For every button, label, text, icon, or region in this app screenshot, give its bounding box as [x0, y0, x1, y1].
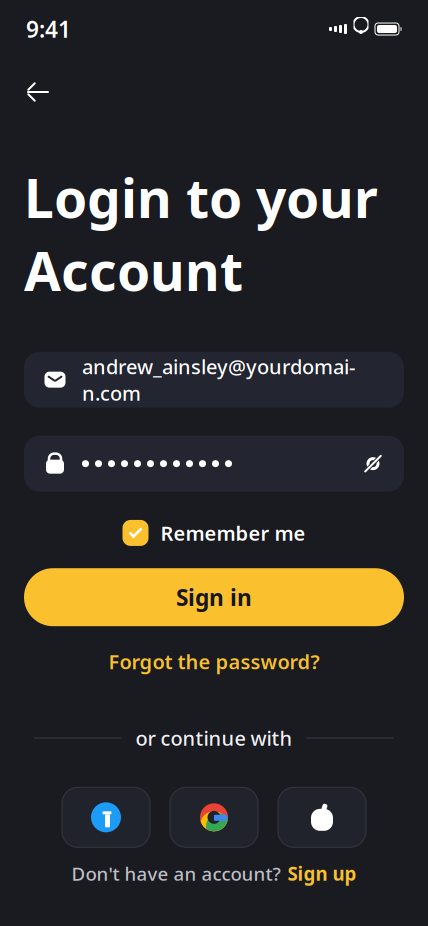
button[interactable]: Sign in with Google [170, 787, 258, 847]
button[interactable]: Sign in [0, 568, 428, 626]
button[interactable]: Sign in with Apple [278, 787, 366, 847]
staticText: Account [24, 235, 243, 306]
staticText: andrew_ainsley@yourdomain.com [82, 353, 355, 406]
button[interactable]: Back [16, 70, 60, 114]
button[interactable]: Forgot the password? [108, 648, 319, 675]
staticText: or continue with [135, 725, 292, 751]
button[interactable]: Remember me [122, 520, 305, 546]
staticText: 9:41 [26, 14, 71, 44]
button[interactable]: Sign up [287, 861, 356, 886]
staticText: Don't have an account? [71, 861, 280, 886]
staticText: Forgot the password? [108, 648, 319, 675]
staticText: Sign in [176, 582, 252, 612]
button[interactable]: Show password [356, 447, 390, 481]
button[interactable]: Sign in with Facebook [62, 787, 150, 847]
staticText: Remember me [160, 520, 305, 546]
staticText: Login to your [24, 162, 378, 233]
staticText: Sign up [287, 861, 356, 886]
